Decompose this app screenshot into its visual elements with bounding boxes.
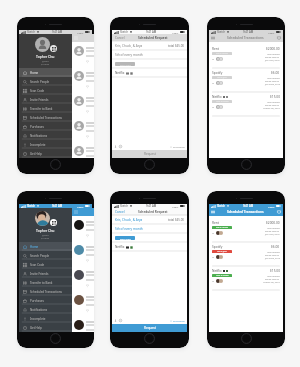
button[interactable]: Incomplete — [19, 314, 72, 323]
staticText: Sketch — [27, 204, 36, 208]
staticText: $2000.00 — [266, 47, 280, 51]
staticText: Sketch — [217, 204, 226, 208]
staticText: $6.00 — [271, 245, 280, 249]
staticText: 9:41 AM — [243, 30, 254, 34]
staticText: will be sent on — [265, 56, 280, 59]
button[interactable]: Transfer to Bank — [19, 278, 72, 287]
button[interactable]: Notifications — [19, 131, 72, 140]
staticText: Invite Friends — [30, 272, 49, 276]
staticText: Scheduled Transactions — [30, 116, 62, 120]
staticText: Transfer to Bank — [30, 107, 53, 111]
button[interactable]: Scan Code — [19, 260, 72, 269]
button[interactable]: 20 Friends — [170, 145, 185, 148]
staticText: Netflix — [115, 245, 125, 249]
staticText: Purchases — [30, 125, 44, 129]
staticText: Topher Chu — [36, 228, 55, 233]
staticText: will be sent on — [265, 230, 280, 233]
staticText: 5th of every month — [115, 227, 143, 231]
staticText: Get Help — [30, 152, 42, 156]
button[interactable]: Even split — [115, 236, 135, 240]
button[interactable]: Scheduled Transactions — [19, 287, 72, 296]
button[interactable]: Scheduled Transactions — [19, 113, 72, 122]
button[interactable]: Get Help — [19, 149, 72, 158]
staticText: total $45.00 — [168, 218, 184, 222]
staticText: Next request — [267, 227, 280, 230]
button[interactable]: Search People — [19, 77, 72, 86]
staticText: 9:41 AM — [243, 204, 254, 208]
button[interactable]: Purchases — [19, 122, 72, 131]
button[interactable]: Transfer to Bank — [19, 104, 72, 113]
button[interactable]: Purchases — [19, 296, 72, 305]
staticText: Arya & Chuck — [216, 100, 229, 103]
staticText: 5th of every month — [115, 53, 143, 57]
staticText: @tchu — [42, 60, 49, 63]
staticText: Next request — [267, 251, 280, 254]
staticText: Even split — [120, 63, 131, 66]
button[interactable]: Add person — [114, 145, 117, 148]
button[interactable]: Menu — [211, 210, 215, 214]
staticText: Purchases — [30, 299, 44, 303]
button[interactable]: Emoji — [119, 319, 122, 322]
staticText: Tim & Jess — [217, 76, 227, 79]
staticText: 9:41 AM — [146, 30, 157, 34]
staticText: Next request — [267, 53, 280, 56]
staticText: Even split — [120, 237, 131, 240]
staticText: to — [212, 58, 215, 61]
button[interactable]: Request — [112, 324, 187, 332]
staticText: Next request — [267, 275, 280, 278]
button[interactable]: Netflix — [209, 267, 283, 291]
staticText: Cancel — [115, 210, 125, 214]
staticText: July 15th, 2018 — [265, 233, 280, 236]
staticText: Kris, Chuck, & Arya — [115, 218, 143, 222]
staticText: to — [212, 280, 215, 283]
button[interactable]: Search People — [19, 251, 72, 260]
staticText: Rent — [212, 221, 219, 225]
button[interactable]: Home — [19, 242, 72, 251]
staticText: Cancel — [115, 36, 125, 40]
staticText: to — [212, 82, 215, 85]
staticText: July 22nd, 2018 — [265, 83, 280, 86]
button[interactable]: 20 Friends — [170, 319, 185, 322]
button[interactable]: Incomplete — [19, 140, 72, 149]
staticText: Rent — [212, 47, 219, 51]
button[interactable]: Rent — [209, 45, 283, 69]
staticText: 100% — [172, 205, 179, 208]
button[interactable]: New — [277, 210, 281, 214]
button[interactable]: Netflix — [209, 93, 283, 117]
button[interactable]: Scan Code — [19, 86, 72, 95]
staticText: Sketch — [217, 30, 226, 34]
staticText: Search People — [30, 80, 50, 84]
staticText: Sketch — [27, 30, 36, 34]
staticText: will be sent on — [265, 104, 280, 107]
staticText: Topher Chu — [36, 54, 55, 59]
staticText: 20 Friends — [173, 145, 185, 148]
staticText: Scheduled Request — [138, 36, 168, 40]
button[interactable]: Spotify — [209, 243, 283, 267]
staticText: 100% — [77, 205, 84, 208]
staticText: $315.80 — [41, 237, 50, 240]
button[interactable]: Even split — [115, 62, 135, 66]
staticText: Netflix — [212, 269, 222, 273]
button[interactable]: Home — [19, 68, 72, 77]
staticText: Scheduled Transactions — [227, 36, 264, 40]
staticText: Kris & Nicole — [216, 226, 228, 229]
button[interactable]: New — [277, 36, 281, 40]
staticText: $15.00 — [270, 269, 280, 273]
button[interactable]: Spotify — [209, 69, 283, 93]
button[interactable]: Cancel — [115, 36, 125, 40]
staticText: Invite Friends — [30, 98, 49, 102]
button[interactable]: Notifications — [19, 305, 72, 314]
staticText: 9:41 AM — [52, 204, 63, 208]
staticText: Home — [30, 245, 39, 249]
button[interactable]: Menu — [211, 36, 215, 40]
staticText: Netflix — [212, 95, 222, 99]
staticText: August 4th, 2018 — [263, 107, 280, 110]
button[interactable]: Invite Friends — [19, 95, 72, 104]
button[interactable]: Cancel — [115, 210, 125, 214]
button[interactable]: Request — [112, 150, 187, 158]
button[interactable]: Emoji — [119, 145, 122, 148]
button[interactable]: Invite Friends — [19, 269, 72, 278]
button[interactable]: Rent — [209, 219, 283, 243]
button[interactable]: Add person — [114, 319, 117, 322]
button[interactable]: Get Help — [19, 323, 72, 332]
